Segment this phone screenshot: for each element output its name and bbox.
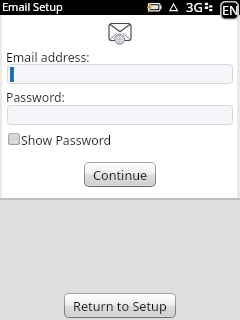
other: Data connection bbox=[204, 2, 214, 13]
other: No signal bbox=[169, 3, 179, 12]
other: Battery charging bbox=[146, 2, 163, 13]
staticText: Show Password bbox=[21, 132, 112, 149]
button[interactable] bbox=[7, 105, 233, 125]
staticText: EN bbox=[222, 2, 239, 19]
button[interactable] bbox=[7, 64, 233, 84]
button[interactable]: Return to Setup bbox=[64, 293, 176, 318]
staticText: 3G bbox=[186, 0, 203, 16]
button[interactable]: Input language EN bbox=[220, 1, 239, 20]
staticText: Continue bbox=[93, 166, 148, 183]
staticText: Return to Setup bbox=[73, 297, 167, 314]
staticText: Password: bbox=[6, 89, 65, 106]
staticText: Email Setup bbox=[2, 0, 63, 14]
staticText: Email address: bbox=[6, 49, 90, 66]
button[interactable]: Show Password bbox=[8, 133, 112, 150]
button[interactable]: Continue bbox=[84, 162, 156, 187]
